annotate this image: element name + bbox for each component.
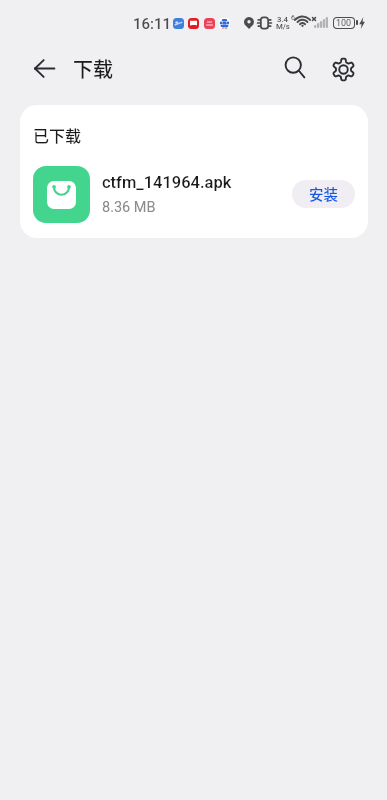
staticText: ctfm_141964.apk (102, 173, 232, 192)
staticText: 已下载 (33, 123, 82, 146)
staticText: 16:11 (133, 15, 172, 33)
button[interactable]: Settings (321, 47, 365, 91)
staticText: 安装 (309, 183, 338, 204)
staticText: 6 (291, 14, 295, 22)
staticText: M/s (276, 22, 290, 31)
button[interactable]: 安装 (292, 180, 355, 208)
button[interactable]: Search (272, 45, 316, 89)
staticText: 100 (336, 18, 352, 28)
button[interactable]: Back (22, 46, 66, 90)
other: Location (244, 17, 254, 29)
staticText: 3.4 (277, 15, 289, 24)
staticText: 8.36 MB (102, 199, 156, 216)
staticText: 下载 (73, 54, 113, 83)
button[interactable]: ctfm_141964.apk (20, 155, 368, 233)
